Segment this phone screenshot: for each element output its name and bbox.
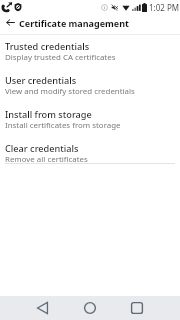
button[interactable]: User credentials: [0, 69, 180, 103]
button[interactable]: Home: [78, 296, 102, 320]
button[interactable]: Navigate up: [0, 14, 20, 31]
staticText: View and modify stored credentials: [5, 86, 135, 97]
button[interactable]: Back: [30, 296, 54, 320]
staticText: Install certificates from storage: [5, 120, 121, 131]
staticText: Remove all certificates: [5, 154, 88, 165]
staticText: Certificate management: [19, 17, 129, 29]
staticText: Install from storage: [5, 108, 92, 121]
staticText: Display trusted CA certificates: [5, 52, 116, 63]
staticText: Clear credentials: [5, 142, 79, 155]
button[interactable]: Recent apps: [125, 296, 149, 320]
button[interactable]: Trusted credentials: [0, 35, 180, 69]
button[interactable]: Clear credentials: [0, 137, 180, 171]
staticText: Trusted credentials: [5, 40, 90, 53]
staticText: 1:02 PM: [149, 2, 180, 13]
button[interactable]: Install from storage: [0, 103, 180, 137]
staticText: User credentials: [5, 74, 77, 87]
